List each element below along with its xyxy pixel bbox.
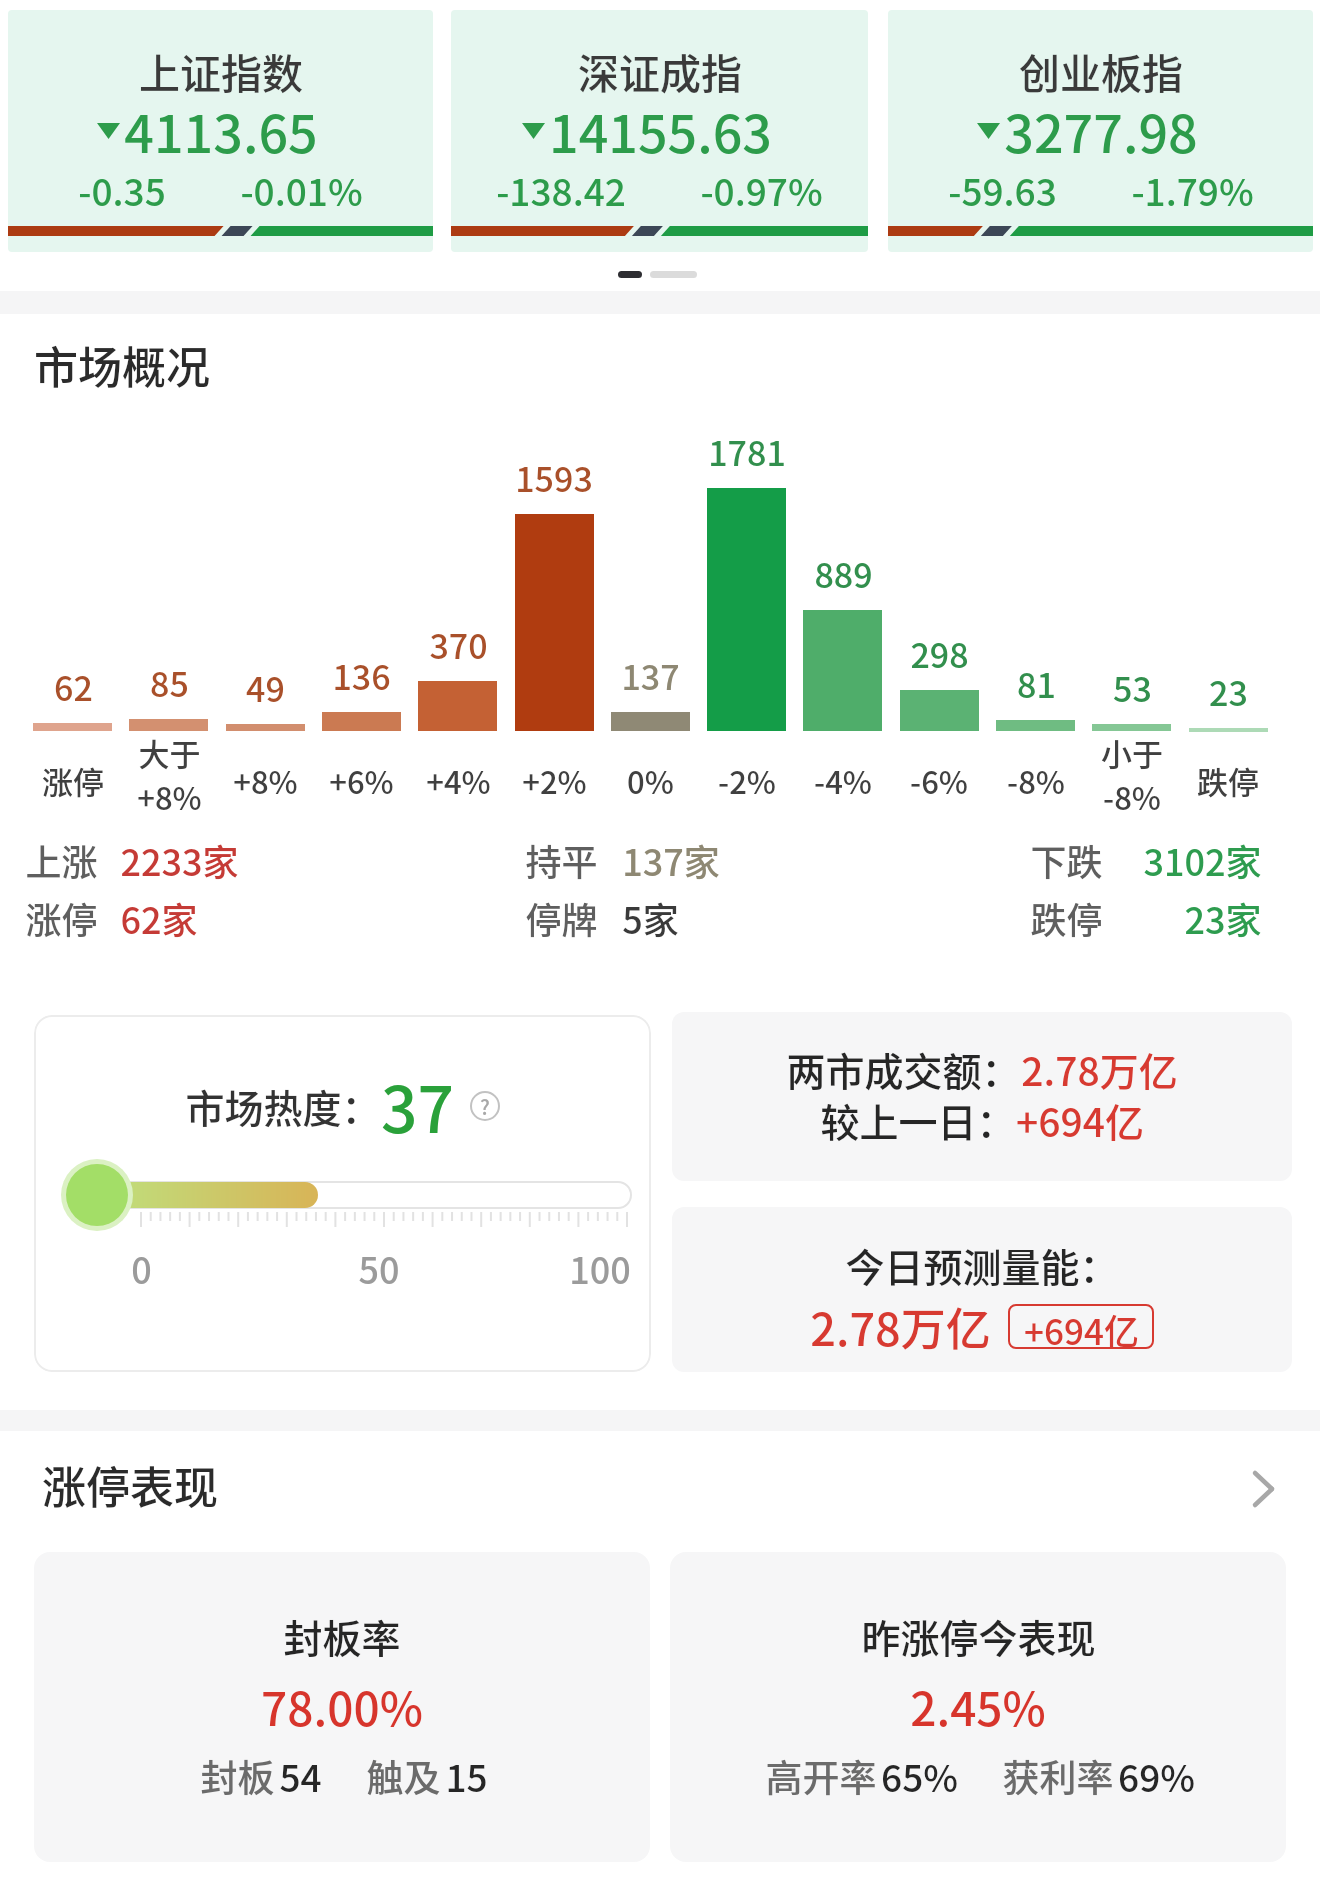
staticText: 获利率 (998, 1749, 1118, 1803)
staticText: -0.97% (700, 163, 823, 217)
staticText: +694亿 (1016, 1092, 1144, 1148)
staticText: 2.78万亿 (1021, 1041, 1178, 1097)
staticText: +2% (522, 758, 587, 803)
staticText: 触及 (362, 1749, 445, 1803)
staticText: 昨涨停今表现 (861, 1608, 1096, 1664)
staticText: 14155.63 (549, 93, 772, 168)
staticText: +6% (329, 758, 394, 803)
staticText: 上涨 (25, 834, 98, 886)
button[interactable]: 上证指数 (8, 10, 433, 252)
button[interactable]: 封板率 (34, 1552, 650, 1862)
staticText: 高开率 (761, 1749, 881, 1803)
staticText: 涨停 (25, 892, 98, 944)
staticText: -2% (718, 758, 776, 803)
staticText: 封板率 (283, 1608, 401, 1664)
staticText: 3102家 (1143, 834, 1262, 886)
staticText: 今日预测量能： (845, 1237, 1119, 1293)
staticText: -0.35 (78, 163, 166, 217)
staticText: 2.78万亿 (810, 1294, 991, 1359)
staticText: 53 (1113, 663, 1152, 712)
staticText: 5家 (622, 892, 679, 944)
staticText: 136 (332, 651, 391, 700)
staticText: 15 (445, 1749, 488, 1803)
button[interactable]: 昨涨停今表现 (670, 1552, 1286, 1862)
staticText: 小于 -8% (1101, 730, 1163, 819)
staticText: ? (480, 1092, 490, 1121)
staticText: 65% (881, 1749, 958, 1803)
staticText: 85 (150, 658, 189, 707)
staticText: 1781 (708, 427, 786, 476)
staticText: 100 (569, 1242, 631, 1294)
staticText: -8% (1007, 758, 1065, 803)
staticText: +8% (233, 758, 298, 803)
button[interactable]: 两市成交额： (672, 1012, 1292, 1181)
staticText: 81 (1017, 659, 1056, 708)
staticText: 跌停 (1197, 758, 1259, 803)
staticText: 停牌 (525, 892, 598, 944)
staticText: 3277.98 (1004, 93, 1198, 168)
staticText: 4113.65 (124, 93, 318, 168)
button[interactable]: 创业板指 (888, 10, 1313, 252)
staticText: -1.79% (1131, 163, 1254, 217)
staticText: 持平 (525, 834, 598, 886)
button[interactable]: 今日预测量能： (672, 1207, 1292, 1372)
staticText: 较上一日： (820, 1092, 1016, 1148)
staticText: 37 (381, 1059, 454, 1152)
staticText: 0% (627, 758, 674, 803)
staticText: 137 (621, 651, 680, 700)
button[interactable]: 涨停表现 (0, 1448, 1320, 1528)
staticText: -4% (814, 758, 872, 803)
staticText: 2.45% (910, 1673, 1046, 1740)
staticText: 0 (131, 1242, 152, 1294)
staticText: +694亿 (1024, 1304, 1139, 1349)
staticText: 大于 +8% (137, 730, 202, 819)
staticText: 50 (358, 1242, 400, 1294)
staticText: 市场概况 (34, 333, 210, 397)
staticText: 1593 (515, 453, 593, 502)
staticText: 370 (429, 620, 488, 669)
staticText: 涨停 (42, 758, 104, 803)
staticText: -6% (910, 758, 968, 803)
staticText: 市场热度： (185, 1078, 381, 1134)
staticText: -138.42 (496, 163, 626, 217)
button[interactable]: 深证成指 (451, 10, 868, 252)
staticText: 137家 (622, 834, 720, 886)
staticText: 49 (246, 663, 285, 712)
staticText: 涨停表现 (42, 1453, 218, 1517)
staticText: -0.01% (240, 163, 363, 217)
staticText: 889 (814, 549, 873, 598)
staticText: 2233家 (120, 834, 239, 886)
staticText: 62 (54, 662, 93, 711)
staticText: -59.63 (948, 163, 1057, 217)
staticText: 下跌 (1030, 834, 1103, 886)
staticText: 54 (279, 1749, 322, 1803)
staticText: +4% (426, 758, 491, 803)
staticText: 深证成指 (578, 41, 742, 100)
staticText: 创业板指 (1019, 41, 1183, 100)
staticText: 跌停 (1030, 892, 1103, 944)
staticText: 上证指数 (139, 41, 303, 100)
button[interactable]: 市场热度： (34, 1015, 651, 1372)
staticText: 23家 (1184, 892, 1262, 944)
staticText: 78.00% (261, 1673, 423, 1740)
staticText: 封板 (196, 1749, 279, 1803)
staticText: 23 (1209, 667, 1248, 716)
staticText: 两市成交额： (786, 1041, 1021, 1097)
staticText: 298 (910, 629, 969, 678)
staticText: 62家 (120, 892, 198, 944)
staticText: 69% (1118, 1749, 1195, 1803)
